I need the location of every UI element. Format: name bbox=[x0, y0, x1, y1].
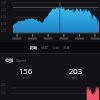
button[interactable]: 距離 bbox=[28, 45, 39, 51]
button[interactable]: 156 bbox=[0, 66, 50, 80]
staticText: 4,06 bbox=[1, 8, 7, 12]
staticText: 最大 bbox=[72, 76, 78, 80]
button[interactable]: 203 bbox=[50, 66, 100, 80]
staticText: 心拍 bbox=[5, 58, 14, 63]
staticText: 高度 bbox=[63, 46, 70, 50]
staticText: 156 bbox=[19, 66, 32, 76]
staticText: 4,07 bbox=[1, 1, 7, 5]
staticText: 距離 bbox=[30, 46, 37, 50]
staticText: 4,03 bbox=[1, 29, 7, 33]
staticText: 203 bbox=[69, 66, 82, 76]
staticText: 時間 bbox=[41, 46, 48, 50]
staticText: 200 bbox=[1, 83, 6, 87]
staticText: 平均 bbox=[22, 76, 28, 80]
staticText: 150 bbox=[1, 91, 6, 95]
button[interactable]: 高度 bbox=[61, 45, 72, 51]
button[interactable]: 心拍 bbox=[50, 45, 61, 51]
staticText: (bpm) bbox=[16, 58, 26, 63]
staticText: 4,05 bbox=[1, 15, 7, 19]
button[interactable]: 時間 bbox=[39, 45, 50, 51]
staticText: 4,04 bbox=[1, 22, 7, 26]
staticText: 心拍 bbox=[52, 46, 59, 50]
